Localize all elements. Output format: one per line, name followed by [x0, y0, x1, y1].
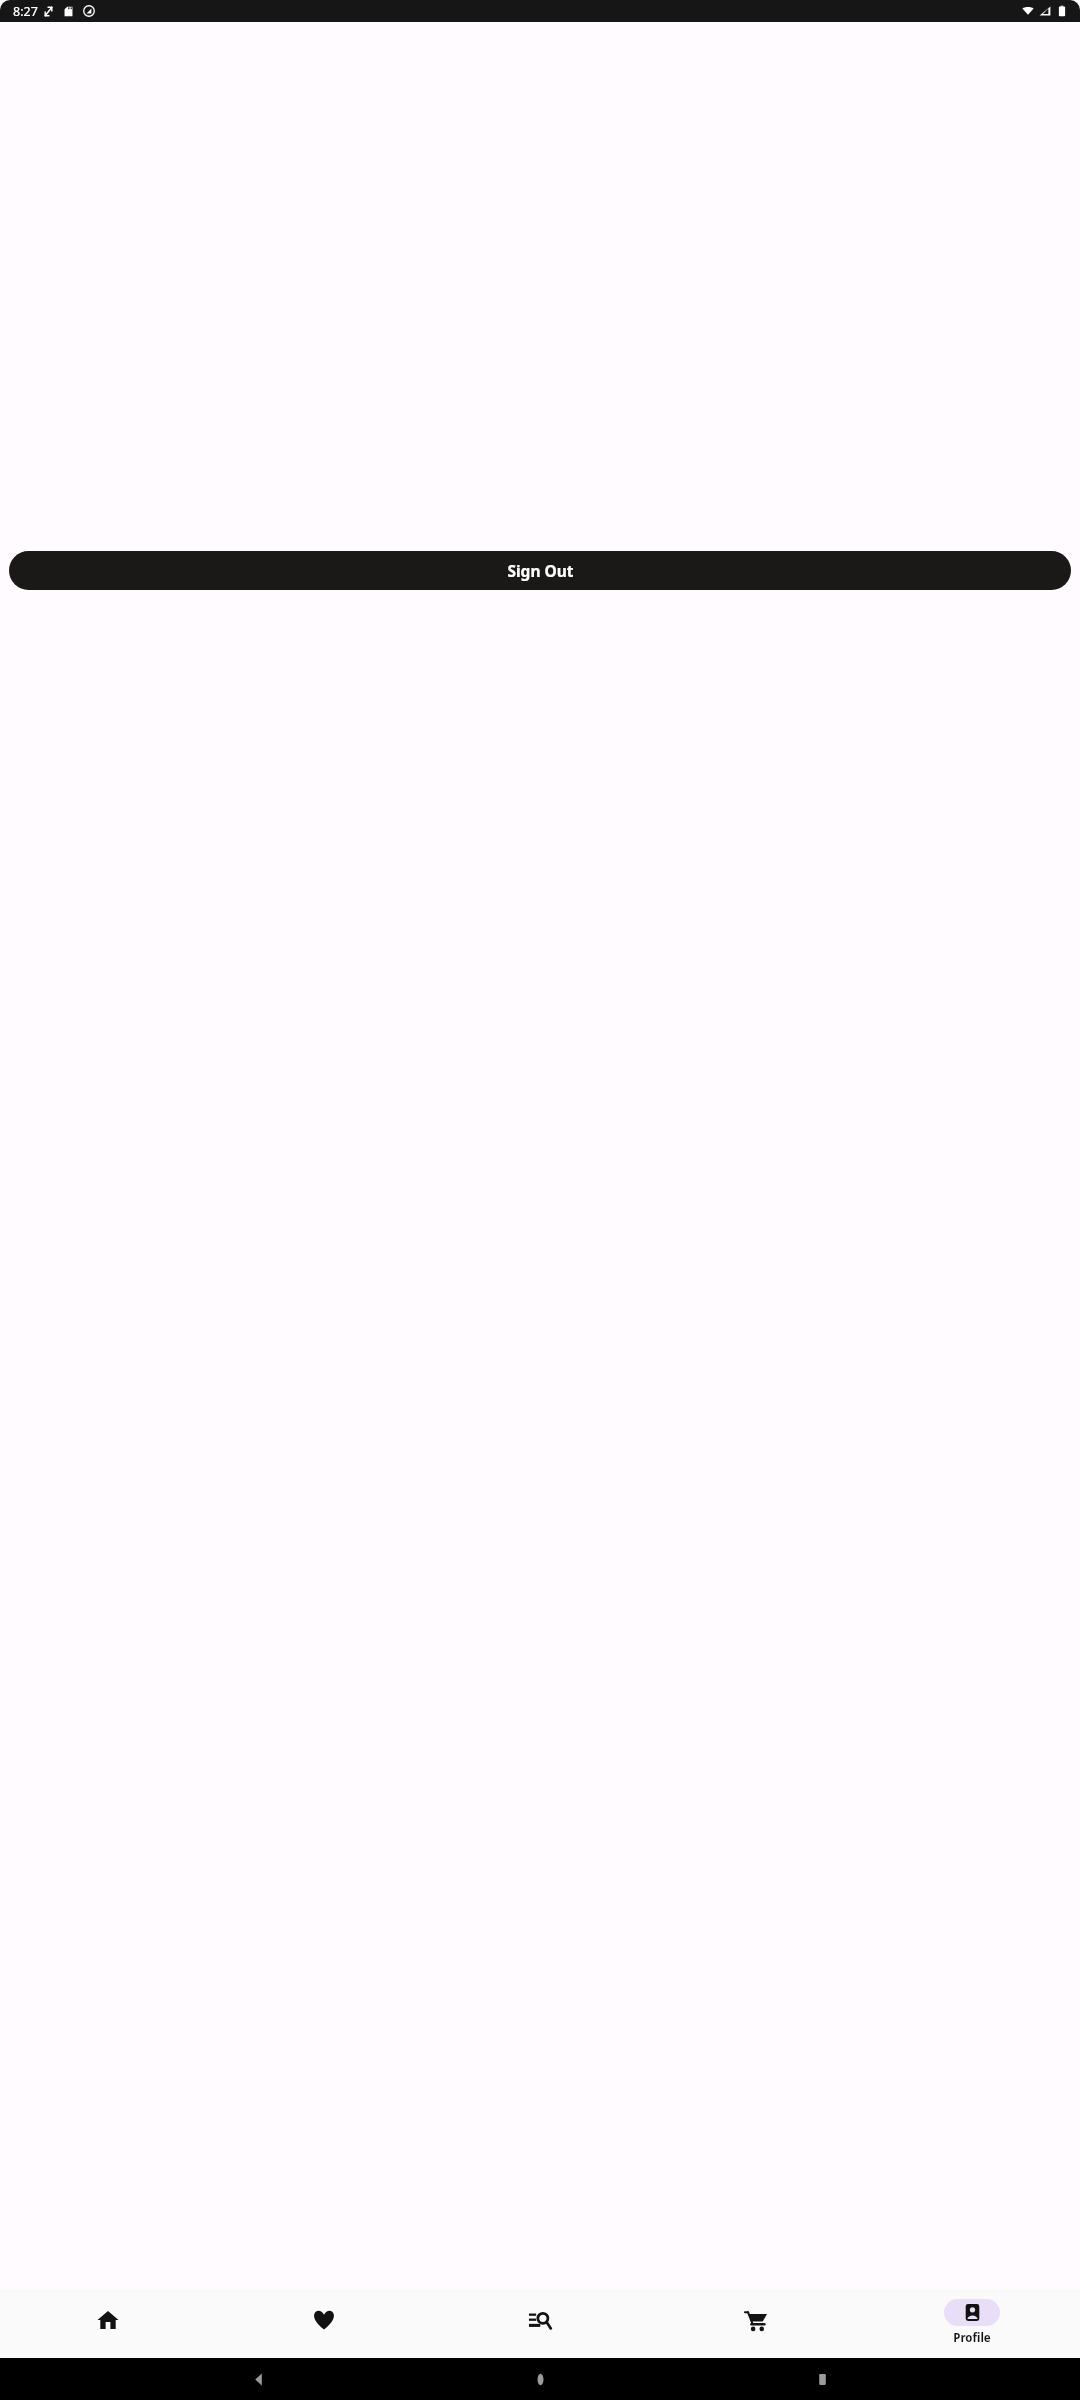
button[interactable]: Home: [516, 2358, 564, 2400]
staticText: 8:27: [13, 3, 38, 20]
button[interactable]: Recents: [798, 2358, 846, 2400]
button[interactable]: Back: [234, 2358, 282, 2400]
button[interactable]: Profile: [864, 2289, 1080, 2358]
staticText: Sign Out: [507, 560, 574, 581]
staticText: Profile: [953, 2330, 991, 2346]
button[interactable]: Cart: [648, 2289, 864, 2358]
button[interactable]: Sign Out: [9, 551, 1071, 590]
button[interactable]: Search: [432, 2289, 648, 2358]
button[interactable]: Favorites: [216, 2289, 432, 2358]
button[interactable]: Home: [0, 2289, 216, 2358]
